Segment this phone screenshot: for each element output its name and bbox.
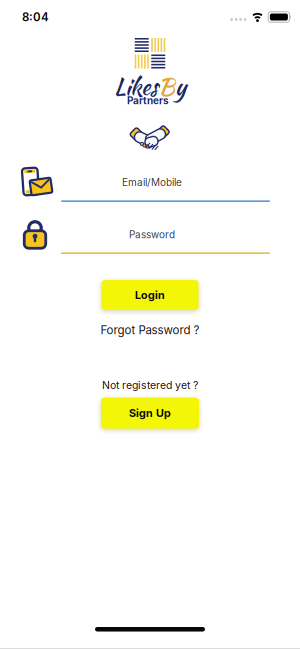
button[interactable]: Forgot Password ? xyxy=(100,323,199,337)
staticText: y xyxy=(175,70,186,103)
staticText: 8:04 xyxy=(22,10,49,24)
staticText: Forgot Password ? xyxy=(100,323,199,337)
staticText: Email/Mobile xyxy=(122,176,182,188)
button[interactable]: Sign Up xyxy=(101,398,199,429)
button[interactable]: Login xyxy=(101,280,198,310)
staticText: Not registered yet ? xyxy=(102,379,198,392)
staticText: Partners xyxy=(127,94,169,107)
staticText: Password xyxy=(129,228,175,241)
button[interactable]: Password xyxy=(61,218,270,254)
staticText: Login xyxy=(135,288,165,302)
staticText: B xyxy=(158,70,175,103)
staticText: Sign Up xyxy=(129,406,171,420)
button[interactable]: Email/Mobile xyxy=(61,166,270,202)
staticText: Likes xyxy=(114,70,158,103)
